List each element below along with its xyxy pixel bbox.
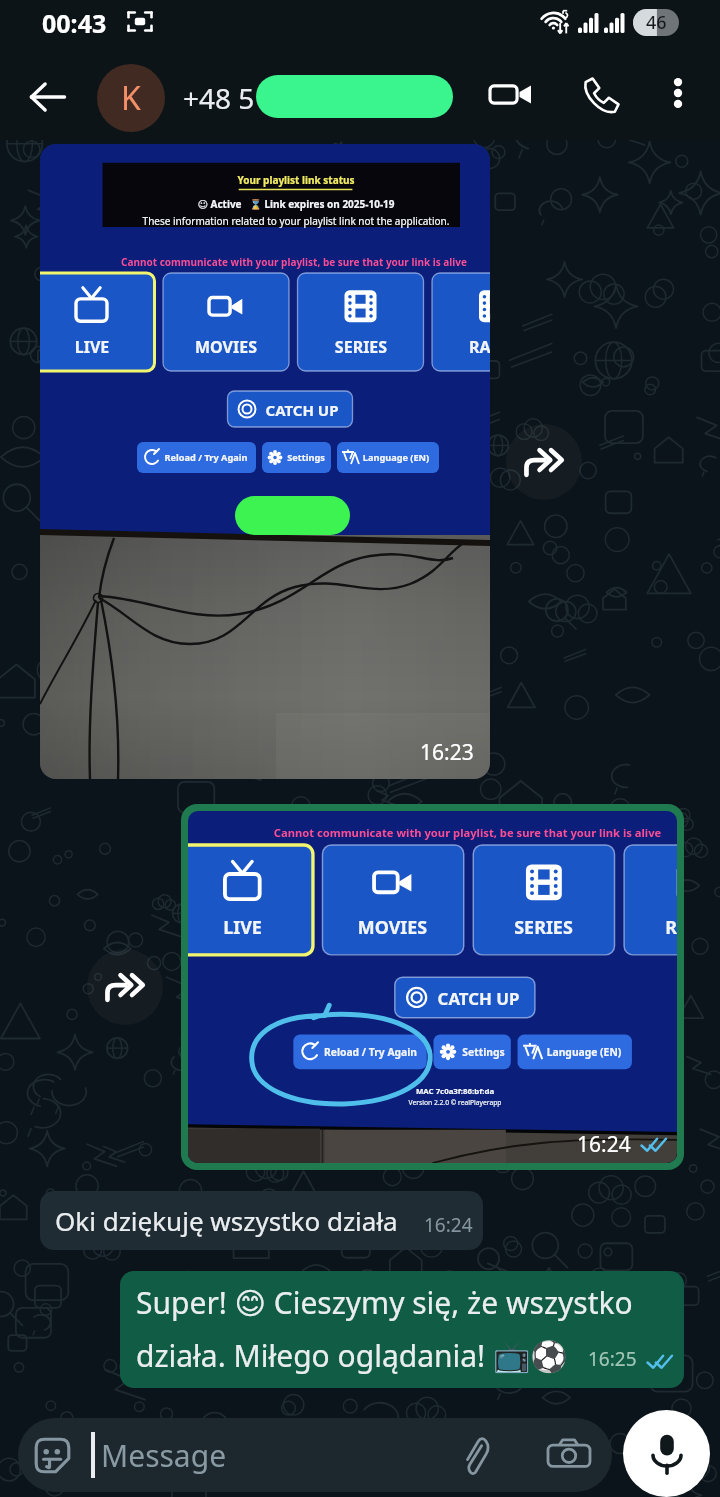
staticText: K	[121, 76, 141, 120]
staticText: Settings	[416, 1045, 551, 1059]
staticText: CATCH UP	[389, 987, 568, 1010]
staticText: 16:24	[424, 1212, 473, 1238]
button[interactable]: Your playlist link status	[181, 804, 684, 1170]
staticText: 16:25	[588, 1346, 637, 1372]
button[interactable]: K	[97, 56, 453, 140]
staticText: ☺ Active ⌛ Link expires on 2025-10-19	[116, 197, 476, 211]
button[interactable]: Forward	[506, 424, 582, 500]
button[interactable]: Forward	[87, 949, 163, 1025]
staticText: Message	[101, 1435, 227, 1476]
staticText: These information related to your playli…	[86, 214, 490, 228]
staticText: Cannot communicate with your playlist, b…	[223, 825, 677, 840]
staticText: 00:43	[42, 6, 107, 40]
button[interactable]: Call	[573, 67, 629, 123]
staticText: +48 5	[183, 79, 255, 117]
staticText: SERIES	[298, 336, 424, 358]
staticText: Reload / Try Again	[281, 1045, 460, 1059]
staticText: MOVIES	[163, 336, 289, 358]
staticText: 16:23	[420, 738, 474, 767]
staticText: RADIO	[624, 915, 677, 939]
staticText: Super! 😊 Cieszymy się, że wszystko	[136, 1282, 633, 1323]
staticText: Version 2.2.0 © realPlayerapp	[343, 1098, 567, 1107]
staticText: działa. Miłego oglądania! 📺⚽	[136, 1335, 568, 1376]
staticText: MAC 7c0a3f:86:bf:da	[343, 1086, 567, 1097]
button[interactable]: Your playlist link status	[40, 144, 490, 779]
other: Emoji	[34, 1437, 71, 1474]
button[interactable]: Back	[19, 68, 76, 125]
staticText: LIVE	[188, 915, 313, 939]
staticText: RADIO	[432, 336, 490, 358]
staticText: SERIES	[473, 915, 614, 939]
staticText: CATCH UP	[222, 400, 382, 420]
button[interactable]: Super! 😊 Cieszymy się, że wszystko	[120, 1271, 684, 1388]
button[interactable]: Oki dziękuję wszystko działa	[40, 1191, 483, 1250]
other: Camera	[548, 1436, 590, 1474]
staticText: Language (EN)	[321, 451, 471, 464]
staticText: Settings	[246, 451, 366, 464]
staticText: Cannot communicate with your playlist, b…	[74, 255, 490, 269]
staticText: MOVIES	[322, 915, 463, 939]
staticText: Language (EN)	[500, 1045, 668, 1059]
staticText: 16:24	[577, 1130, 631, 1159]
button[interactable]: Voice message	[623, 1410, 710, 1497]
button[interactable]: More options	[652, 67, 704, 119]
staticText: Reload / Try Again	[126, 451, 286, 464]
other: Attach	[460, 1432, 490, 1478]
button[interactable]: Emoji	[18, 1418, 612, 1492]
staticText: Oki dziękuję wszystko działa	[55, 1203, 398, 1238]
staticText: 46	[646, 10, 667, 35]
button[interactable]: Video call	[482, 66, 538, 122]
staticText: Your playlist link status	[146, 173, 446, 187]
staticText: LIVE	[40, 336, 155, 358]
